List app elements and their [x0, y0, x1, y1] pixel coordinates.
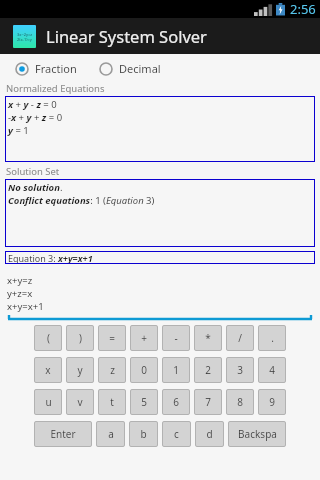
button[interactable]: *	[194, 325, 222, 351]
staticText: 6	[173, 395, 179, 409]
staticText: 5	[141, 395, 147, 409]
button[interactable]: c	[162, 421, 191, 447]
staticText: y	[77, 363, 83, 377]
button[interactable]: Enter	[34, 421, 92, 447]
staticText: Fraction	[35, 61, 77, 76]
staticText: v	[77, 395, 83, 409]
staticText: y = 1	[8, 124, 29, 137]
staticText: Decimal	[119, 61, 161, 76]
staticText: 2	[205, 363, 211, 377]
staticText: 2:56	[290, 0, 316, 18]
staticText: 3x−2y=z	[17, 32, 33, 37]
button[interactable]: 6	[162, 389, 190, 415]
staticText: *	[205, 331, 211, 345]
staticText: 4	[269, 363, 275, 377]
staticText: 3	[237, 363, 243, 377]
staticText: Normalized Equations	[6, 82, 105, 95]
button[interactable]: Backspa	[228, 421, 286, 447]
button[interactable]: -	[162, 325, 190, 351]
staticText: a	[108, 427, 114, 441]
button[interactable]: 3	[226, 357, 254, 383]
staticText: d	[206, 427, 213, 441]
button[interactable]: 9	[258, 389, 286, 415]
button[interactable]: =	[98, 325, 126, 351]
staticText: Enter	[50, 427, 76, 441]
staticText: b	[140, 427, 147, 441]
button[interactable]: 2	[194, 357, 222, 383]
staticText: z	[110, 363, 115, 377]
button[interactable]: a	[96, 421, 125, 447]
button[interactable]: )	[66, 325, 94, 351]
button[interactable]: Decimal	[97, 59, 163, 78]
button[interactable]: 5	[130, 389, 158, 415]
staticText: +	[141, 331, 147, 345]
button[interactable]: y	[66, 357, 94, 383]
button[interactable]: /	[226, 325, 254, 351]
button[interactable]: b	[129, 421, 158, 447]
button[interactable]: x	[34, 357, 62, 383]
staticText: -	[174, 331, 178, 345]
staticText: )	[79, 331, 82, 345]
staticText: 7	[205, 395, 211, 409]
staticText: Conflict equations: 1 (Equation 3)	[8, 194, 155, 207]
button[interactable]: t	[98, 389, 126, 415]
staticText: No solution.	[8, 181, 63, 194]
staticText: x	[45, 363, 51, 377]
button[interactable]: u	[34, 389, 62, 415]
button[interactable]: 0	[130, 357, 158, 383]
staticText: .	[271, 331, 274, 345]
staticText: (	[47, 331, 50, 345]
staticText: 1	[173, 363, 179, 377]
button[interactable]: x+y=z	[0, 264, 320, 322]
staticText: 8	[237, 395, 243, 409]
staticText: Equation 3: x+y=x+1	[8, 252, 93, 264]
button[interactable]: 8	[226, 389, 254, 415]
staticText: u	[45, 395, 52, 409]
staticText: x+y=z	[7, 274, 33, 287]
staticText: x + y - z = 0	[8, 98, 57, 111]
staticText: -x + y + z = 0	[8, 111, 63, 124]
button[interactable]: .	[258, 325, 286, 351]
staticText: t	[110, 395, 114, 409]
staticText: 2(x-1)=y	[17, 37, 32, 42]
staticText: c	[174, 427, 179, 441]
staticText: Linear System Solver	[46, 25, 207, 47]
button[interactable]: 7	[194, 389, 222, 415]
staticText: =	[109, 331, 115, 345]
staticText: Solution Set	[6, 165, 60, 178]
button[interactable]: +	[130, 325, 158, 351]
button[interactable]: 1	[162, 357, 190, 383]
staticText: 9	[269, 395, 275, 409]
staticText: x+y=x+1	[7, 300, 44, 313]
staticText: 0	[141, 363, 147, 377]
staticText: Backspa	[238, 427, 277, 441]
button[interactable]: z	[98, 357, 126, 383]
button[interactable]: v	[66, 389, 94, 415]
staticText: /	[238, 331, 242, 345]
button[interactable]: (	[34, 325, 62, 351]
button[interactable]: 4	[258, 357, 286, 383]
button[interactable]: Fraction	[13, 59, 79, 78]
staticText: y+z=x	[7, 287, 33, 300]
button[interactable]: d	[195, 421, 224, 447]
